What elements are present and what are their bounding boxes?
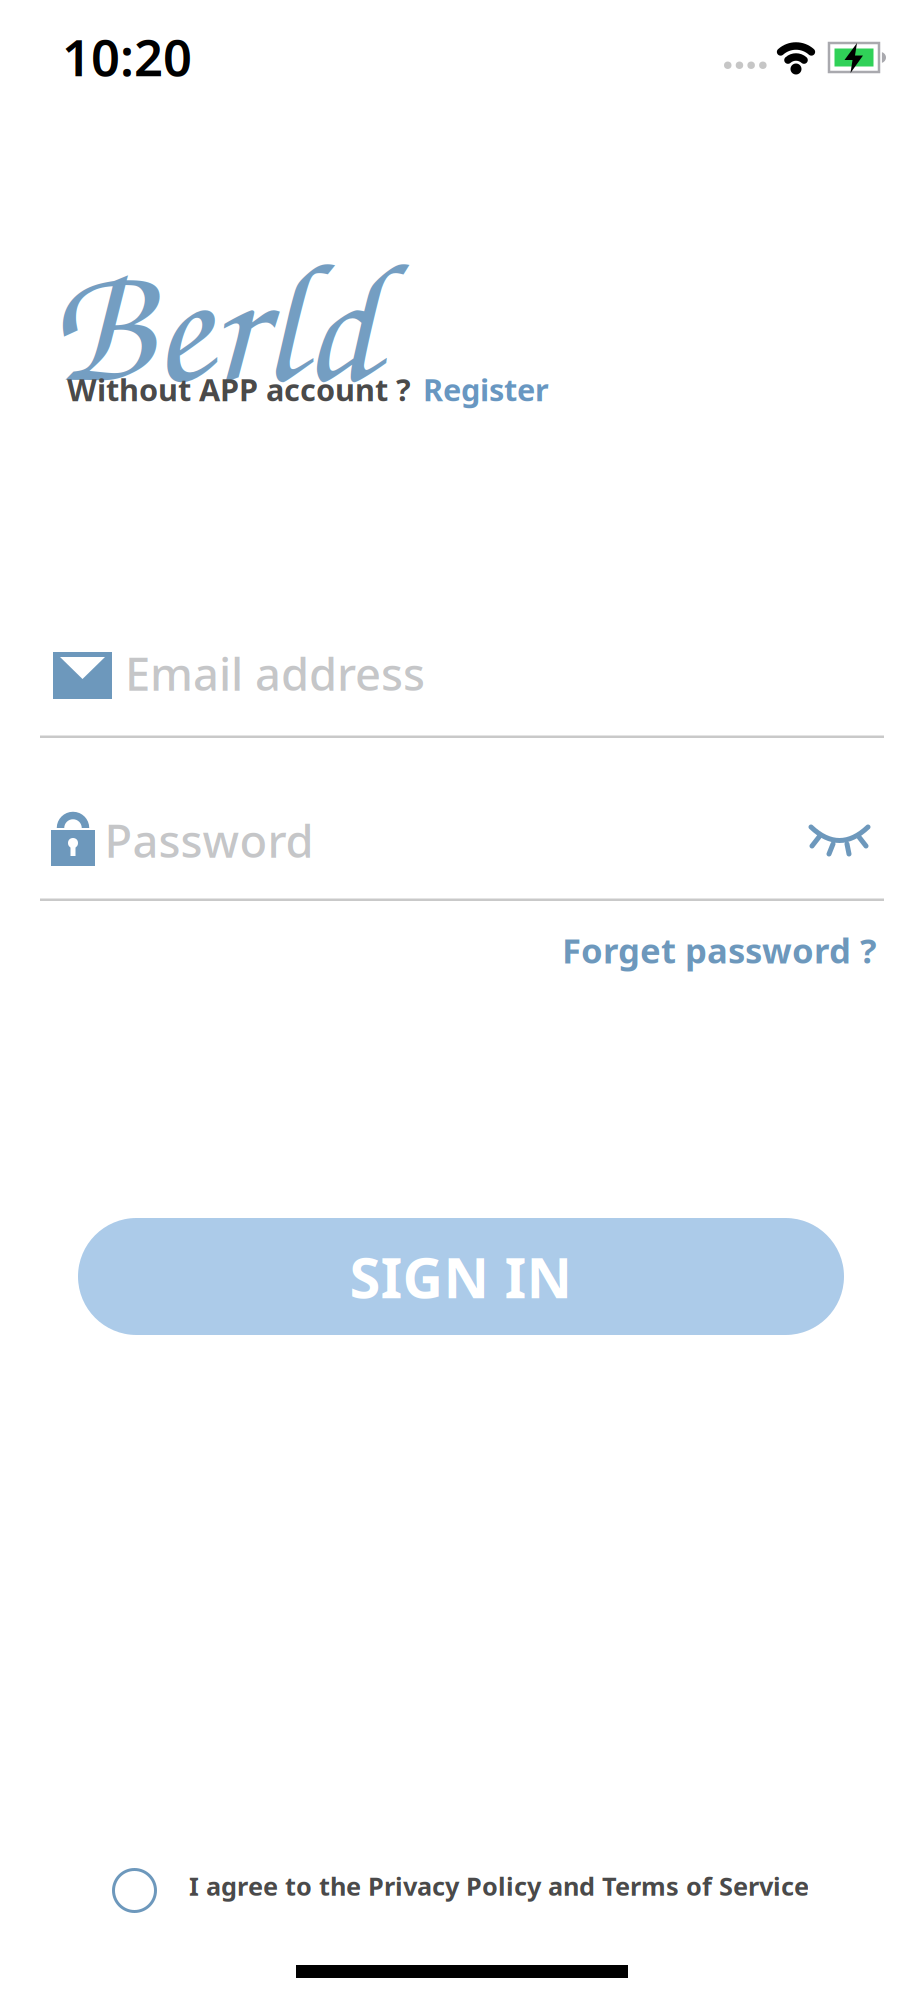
button[interactable]: Email address xyxy=(40,640,884,740)
staticText: Forget password ? xyxy=(562,927,877,973)
staticText: Email address xyxy=(125,643,425,703)
button[interactable] xyxy=(806,823,872,857)
staticText: Password xyxy=(104,810,313,870)
button[interactable]: I agree to the Privacy Policy and Terms … xyxy=(111,1869,866,1915)
staticText: Register xyxy=(423,369,549,410)
staticText: SIGN IN xyxy=(349,1239,572,1314)
button[interactable]: Register xyxy=(423,369,549,410)
staticText: I agree to the Privacy Policy and Terms … xyxy=(189,1869,809,1903)
staticText: Without APP account ? xyxy=(67,369,411,410)
button[interactable]: Password xyxy=(40,800,884,901)
button[interactable]: Forget password ? xyxy=(562,927,877,973)
staticText: 10:20 xyxy=(62,23,192,90)
staticText: Berld xyxy=(50,205,377,429)
button[interactable]: SIGN IN xyxy=(78,1218,844,1335)
